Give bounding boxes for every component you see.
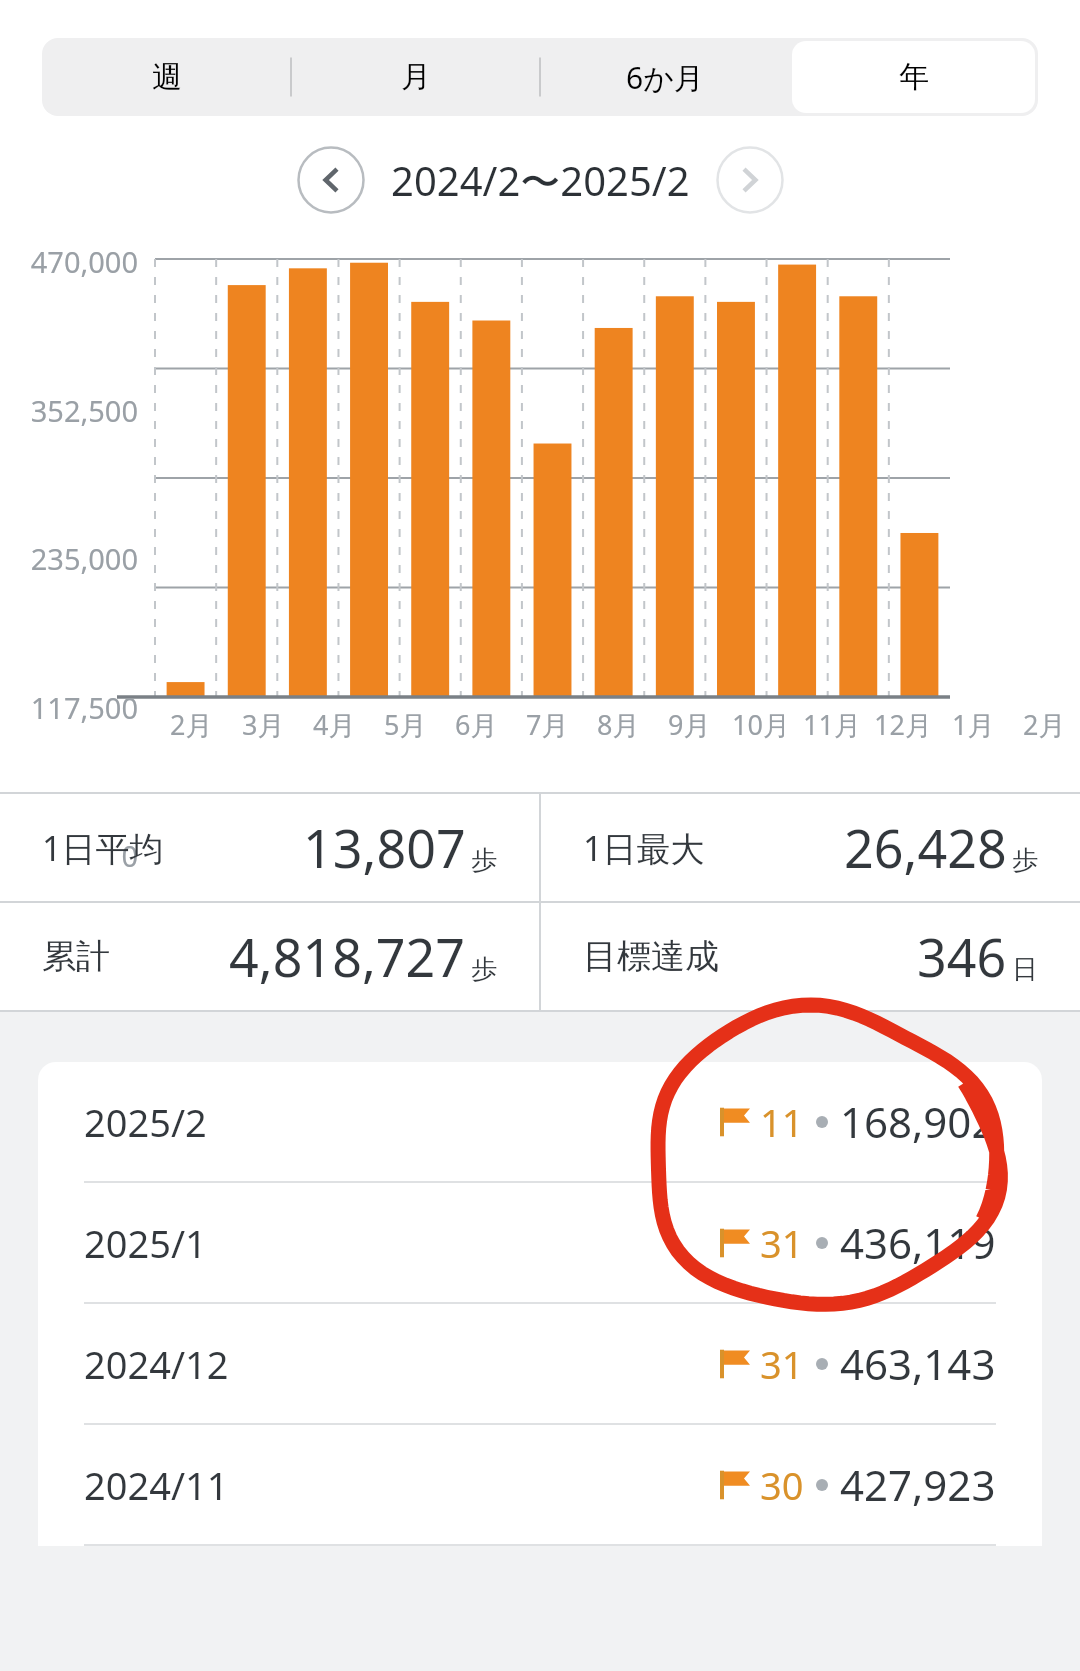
staticText: 6か月 <box>626 57 704 98</box>
staticText: 11月 <box>803 706 861 743</box>
staticText: 7月 <box>526 706 569 743</box>
button[interactable]: 2024/11 <box>84 1425 996 1544</box>
button[interactable]: 年 <box>792 41 1035 113</box>
staticText: 168,902 <box>840 1093 996 1150</box>
button[interactable]: Next period <box>716 146 784 214</box>
staticText: 346 <box>917 921 1007 992</box>
button[interactable]: 2025/2 <box>84 1062 996 1181</box>
button[interactable]: 2025/1 <box>84 1183 996 1302</box>
staticText: 352,500 <box>0 391 138 430</box>
staticText: 2024/2〜2025/2 <box>391 153 690 208</box>
staticText: 2024/12 <box>84 1338 229 1390</box>
button[interactable]: 6か月 <box>543 41 786 113</box>
button[interactable]: 目標達成 <box>583 903 1038 1010</box>
staticText: 週 <box>152 58 182 96</box>
staticText: 月 <box>401 58 431 96</box>
staticText: 目標達成 <box>583 935 719 978</box>
staticText: 5月 <box>384 706 427 743</box>
staticText: 3月 <box>242 706 285 743</box>
staticText: 470,000 <box>0 242 138 281</box>
button[interactable]: 累計 <box>42 903 497 1010</box>
staticText: 436,119 <box>840 1214 996 1271</box>
button[interactable]: 週 <box>45 41 288 113</box>
staticText: 26,428 <box>844 812 1007 883</box>
staticText: 463,143 <box>840 1335 996 1392</box>
staticText: 2025/1 <box>84 1217 207 1269</box>
staticText: 9月 <box>668 706 711 743</box>
staticText: 4,818,727 <box>229 921 466 992</box>
staticText: 歩 <box>471 953 497 986</box>
staticText: 2月 <box>1023 706 1066 743</box>
staticText: 日 <box>1012 953 1038 986</box>
button[interactable]: 1日最大 <box>583 794 1038 901</box>
staticText: 2月 <box>170 706 213 743</box>
staticText: 1日平均 <box>42 825 164 871</box>
staticText: 0 <box>0 836 138 875</box>
button[interactable]: 1日平均 <box>42 794 497 901</box>
staticText: 6月 <box>455 706 498 743</box>
staticText: 427,923 <box>840 1456 996 1513</box>
staticText: 年 <box>899 58 929 96</box>
staticText: 31 <box>760 1338 804 1390</box>
staticText: 30 <box>760 1459 804 1511</box>
staticText: 歩 <box>471 844 497 877</box>
staticText: 4月 <box>313 706 356 743</box>
button[interactable]: 月 <box>294 41 537 113</box>
staticText: 累計 <box>42 935 110 978</box>
staticText: 1日最大 <box>583 825 705 871</box>
staticText: 10月 <box>732 706 790 743</box>
staticText: 235,000 <box>0 539 138 578</box>
staticText: 13,807 <box>303 812 466 883</box>
staticText: 8月 <box>597 706 640 743</box>
staticText: 2025/2 <box>84 1096 207 1148</box>
staticText: 歩 <box>1012 844 1038 877</box>
staticText: 2024/11 <box>84 1459 229 1511</box>
button[interactable]: Previous period <box>297 146 365 214</box>
staticText: 117,500 <box>0 688 138 727</box>
staticText: 31 <box>760 1217 804 1269</box>
staticText: 11 <box>760 1096 804 1148</box>
staticText: 1月 <box>952 706 995 743</box>
button[interactable]: 2024/12 <box>84 1304 996 1423</box>
staticText: 12月 <box>874 706 932 743</box>
